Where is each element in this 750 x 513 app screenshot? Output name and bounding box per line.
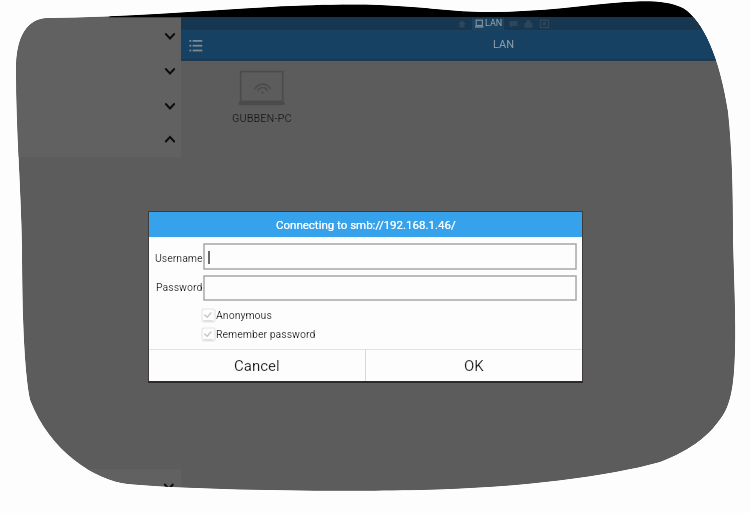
button[interactable]: LAN tab (472, 18, 504, 30)
staticText: Username (155, 252, 203, 264)
staticText: Connecting to smb://192.168.1.46/ (276, 218, 456, 231)
staticText: OK (464, 357, 484, 375)
button[interactable]: Expand (162, 67, 178, 77)
button[interactable]: Anonymous (202, 307, 272, 323)
button[interactable]: Text field (204, 244, 576, 269)
staticText: LAN (493, 38, 515, 51)
button[interactable]: Tab 3 (524, 20, 533, 28)
staticText: GUBBEN-PC (232, 112, 292, 125)
staticText: Password (156, 281, 203, 293)
button[interactable]: Text field (204, 276, 576, 300)
staticText: Cancel (234, 357, 280, 375)
button[interactable]: Remember password (202, 326, 316, 342)
button[interactable]: Expand (163, 483, 175, 491)
staticText: Anonymous (216, 309, 272, 321)
button[interactable]: Tab 4 (540, 20, 549, 28)
button[interactable]: Home (458, 20, 466, 28)
button[interactable]: Collapse (162, 135, 178, 145)
button[interactable]: Tab 2 (509, 20, 518, 28)
button[interactable]: Expand (162, 32, 178, 42)
staticText: LAN (485, 18, 503, 29)
button[interactable]: Expand (162, 102, 178, 112)
staticText: Remember password (216, 328, 316, 340)
button[interactable]: OK (366, 350, 582, 381)
button[interactable]: Open navigation drawer (186, 33, 208, 55)
button[interactable]: Cancel (149, 350, 365, 381)
button[interactable]: GUBBEN-PC computer (232, 66, 288, 108)
